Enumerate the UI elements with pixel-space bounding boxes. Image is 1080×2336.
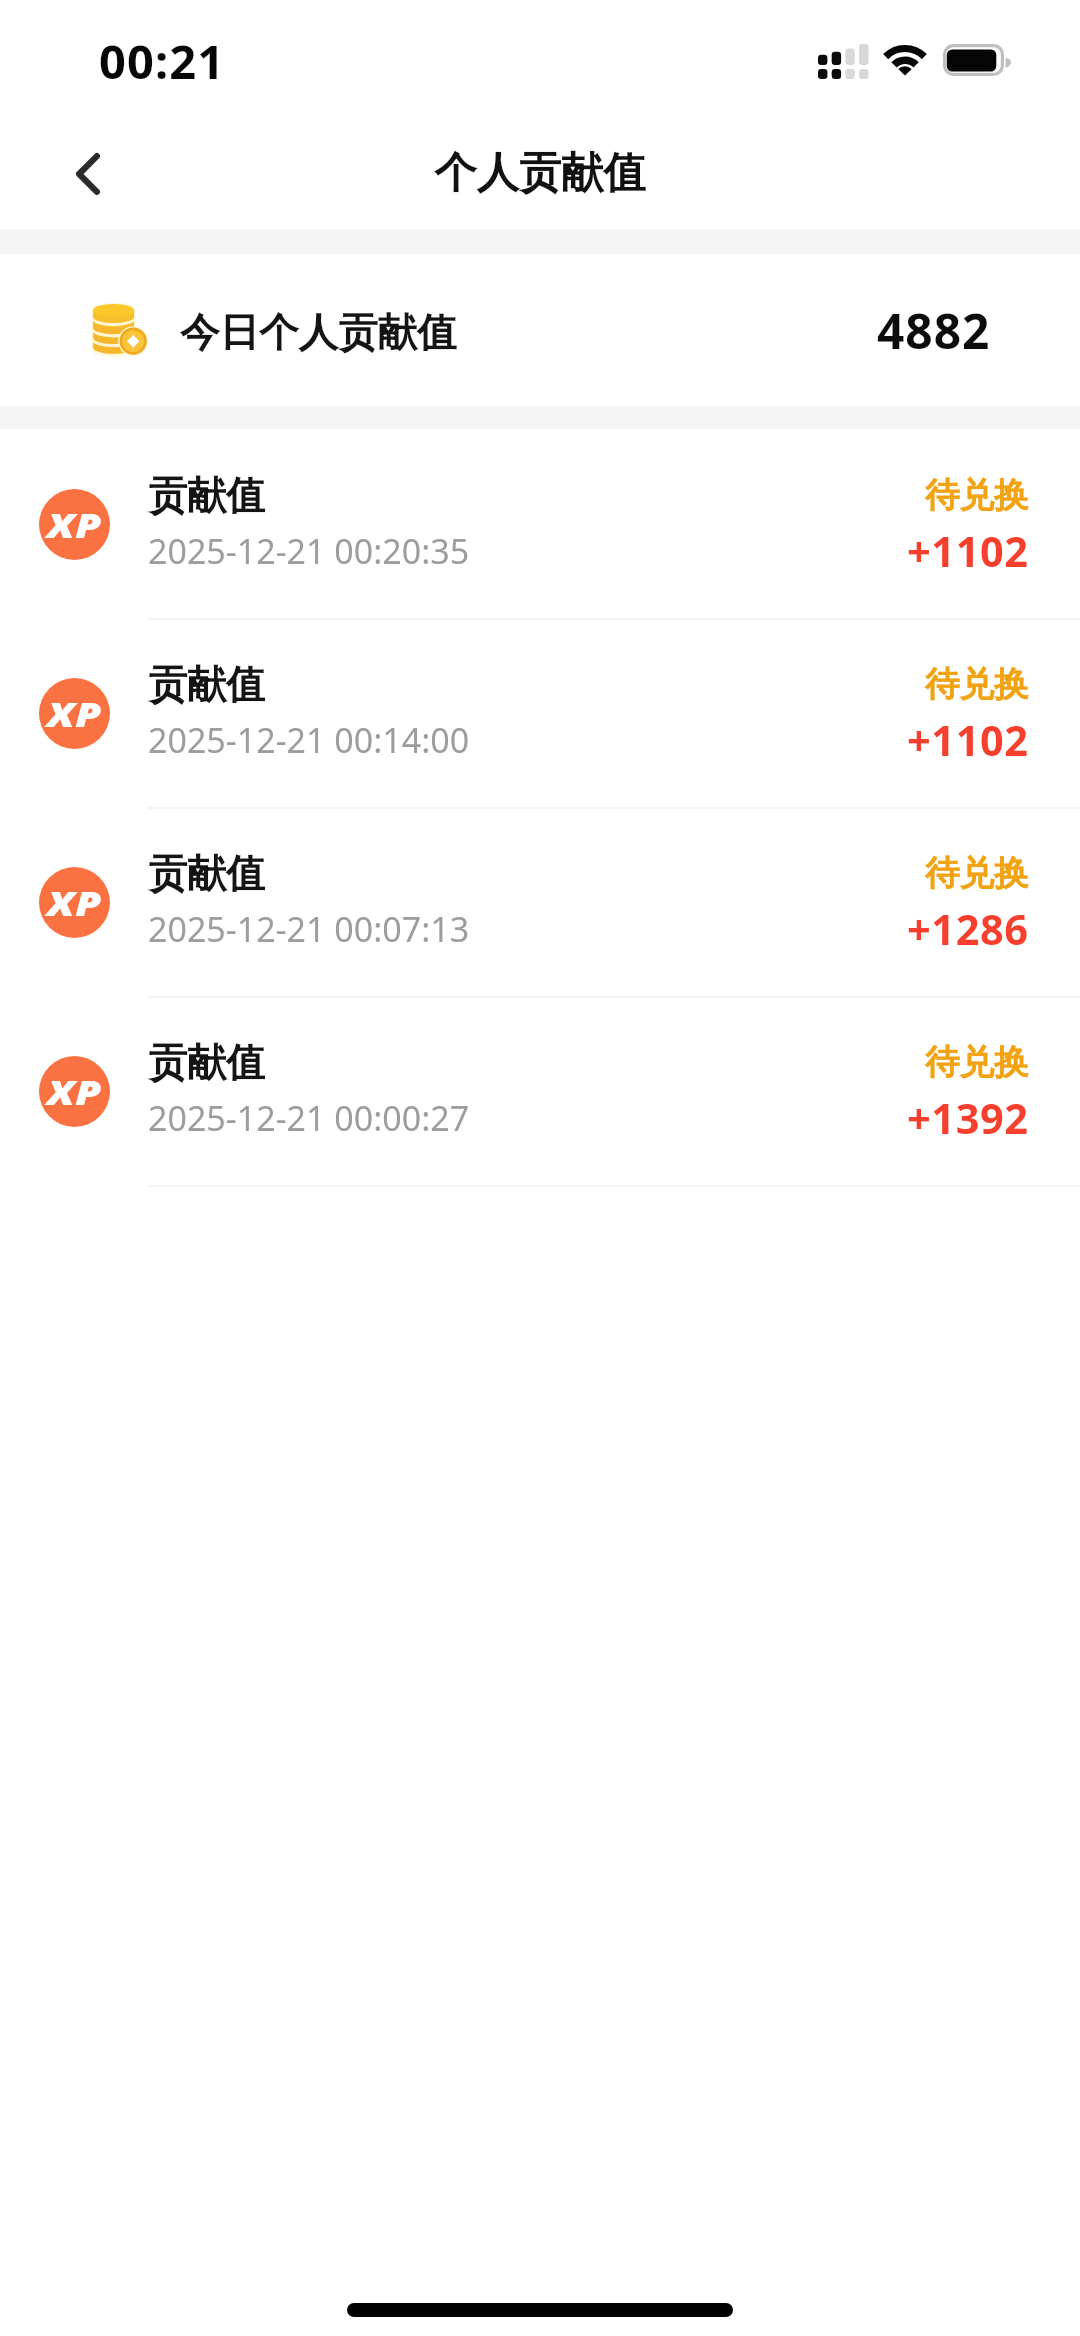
staticText: 2025-12-21 00:20:35 bbox=[148, 528, 470, 574]
staticText: XP bbox=[47, 502, 102, 548]
staticText: 待兑换 bbox=[925, 1041, 1029, 1084]
staticText: 待兑换 bbox=[925, 852, 1029, 895]
other: Battery full bbox=[941, 42, 1013, 78]
button[interactable]: Back bbox=[45, 131, 131, 217]
staticText: 今日个人贡献值 bbox=[180, 308, 457, 358]
staticText: 贡献值 bbox=[148, 849, 265, 898]
staticText: 2025-12-21 00:07:13 bbox=[148, 906, 470, 952]
staticText: XP bbox=[47, 691, 102, 737]
staticText: 待兑换 bbox=[925, 663, 1029, 706]
staticText: 贡献值 bbox=[148, 660, 265, 709]
other: Wi-Fi bbox=[883, 44, 929, 80]
button[interactable]: 今日个人贡献值 bbox=[0, 254, 1080, 406]
staticText: 00:21 bbox=[99, 29, 226, 93]
staticText: +1102 bbox=[907, 523, 1029, 580]
button[interactable]: XP bbox=[0, 428, 1080, 617]
other: Cellular signal bbox=[818, 44, 868, 79]
button[interactable]: XP bbox=[0, 806, 1080, 995]
staticText: 4882 bbox=[877, 298, 991, 363]
button[interactable]: XP bbox=[0, 995, 1080, 1184]
staticText: 2025-12-21 00:00:27 bbox=[148, 1095, 470, 1141]
staticText: XP bbox=[47, 1069, 102, 1115]
staticText: 2025-12-21 00:14:00 bbox=[148, 717, 470, 763]
button[interactable]: XP bbox=[0, 617, 1080, 806]
staticText: 贡献值 bbox=[148, 471, 265, 520]
staticText: +1286 bbox=[907, 901, 1029, 958]
staticText: 个人贡献值 bbox=[0, 146, 1080, 199]
staticText: 贡献值 bbox=[148, 1038, 265, 1087]
staticText: +1102 bbox=[907, 712, 1029, 769]
staticText: 待兑换 bbox=[925, 474, 1029, 517]
staticText: XP bbox=[47, 880, 102, 926]
staticText: +1392 bbox=[907, 1090, 1029, 1147]
